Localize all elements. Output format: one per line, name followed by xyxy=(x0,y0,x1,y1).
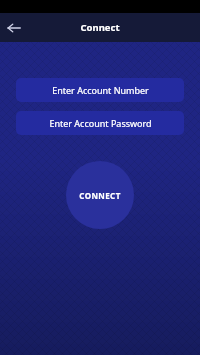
button[interactable]: Enter Account Number xyxy=(16,78,184,102)
button[interactable]: Back xyxy=(0,14,28,42)
button[interactable]: CONNECT xyxy=(66,161,134,229)
button[interactable]: Enter Account Password xyxy=(16,111,184,135)
staticText: CONNECT xyxy=(79,190,121,201)
staticText: Enter Account Password xyxy=(49,117,152,129)
staticText: Enter Account Number xyxy=(52,84,149,96)
staticText: Connect xyxy=(80,21,120,34)
